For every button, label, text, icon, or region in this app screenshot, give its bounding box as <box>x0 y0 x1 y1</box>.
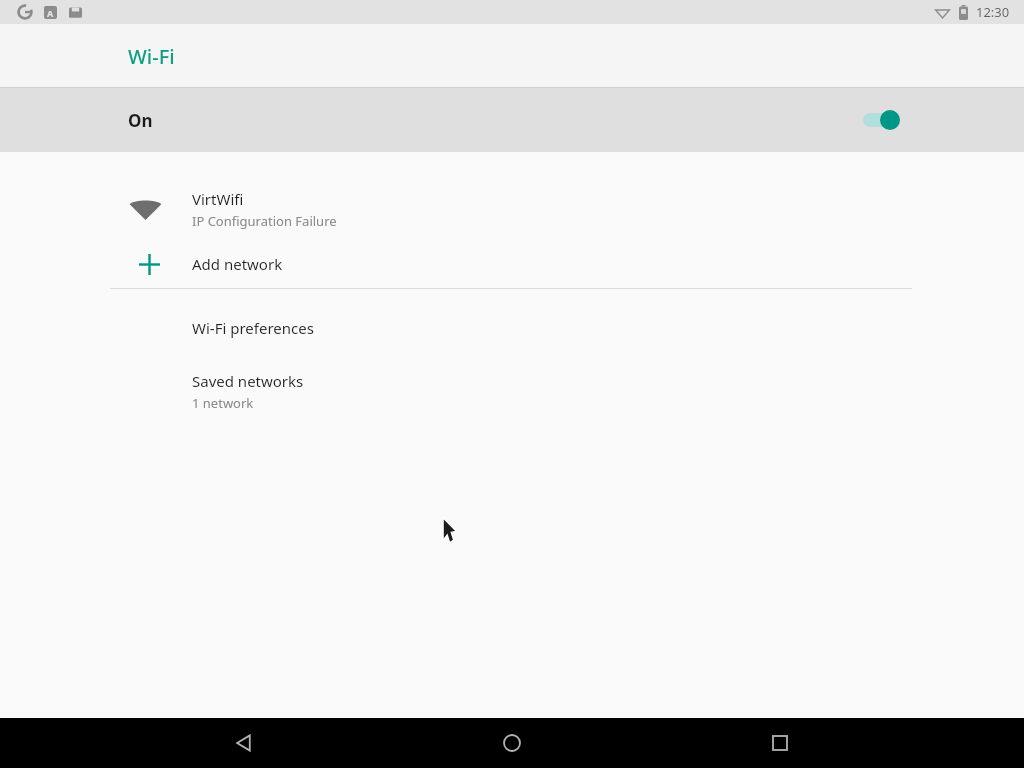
button[interactable]: VirtWifi <box>0 178 1024 240</box>
button[interactable]: Wi-Fi preferences <box>0 311 1024 345</box>
staticText: Saved networks <box>192 371 304 391</box>
staticText: Wi-Fi <box>128 43 175 70</box>
staticText: On <box>128 109 153 132</box>
button[interactable]: Add network <box>0 240 1024 288</box>
button[interactable]: Back <box>220 719 268 767</box>
staticText: 1 network <box>192 394 254 412</box>
button[interactable]: Saved networks <box>0 369 1024 418</box>
staticText: Wi-Fi preferences <box>192 318 314 338</box>
button[interactable]: Recent apps <box>756 719 804 767</box>
button[interactable]: Wi-Fi toggle <box>860 106 900 134</box>
button[interactable]: On <box>0 88 1024 152</box>
staticText: A <box>47 7 54 19</box>
staticText: IP Configuration Failure <box>192 212 337 230</box>
staticText: Add network <box>192 254 283 274</box>
button[interactable]: Home <box>488 719 536 767</box>
staticText: 12:30 <box>976 3 1010 21</box>
staticText: VirtWifi <box>192 189 244 209</box>
